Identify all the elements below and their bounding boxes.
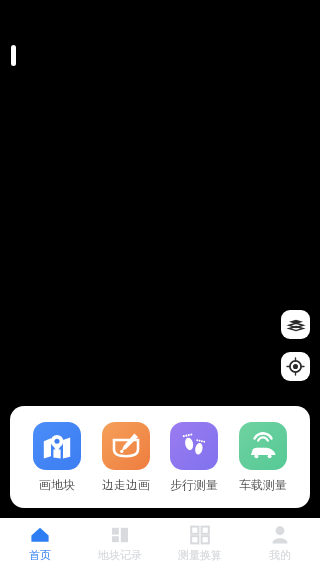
staticText: 地块记录 [98, 548, 142, 562]
button[interactable]: Map layers [281, 310, 310, 339]
button[interactable]: 我的 [240, 518, 320, 568]
button[interactable]: My location [281, 352, 310, 381]
staticText: 边走边画 [102, 477, 150, 492]
button[interactable]: 地块记录 [80, 518, 160, 568]
staticText: 首页 [29, 548, 51, 562]
staticText: 车载测量 [239, 477, 287, 492]
staticText: 步行测量 [170, 477, 218, 492]
button[interactable]: 边走边画 [99, 420, 153, 494]
staticText: 我的 [269, 548, 291, 562]
staticText: 画地块 [39, 477, 75, 492]
button[interactable]: 首页 [0, 518, 80, 568]
button[interactable]: 步行测量 [167, 420, 221, 494]
staticText: 测量换算 [178, 548, 222, 562]
button[interactable]: 测量换算 [160, 518, 240, 568]
button[interactable]: 画地块 [30, 420, 84, 494]
button[interactable]: 车载测量 [236, 420, 290, 494]
